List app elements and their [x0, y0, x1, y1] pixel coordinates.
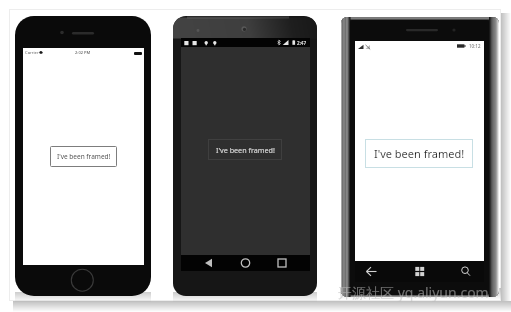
staticText: I've been framed! — [374, 146, 465, 161]
staticText: 2:02 PM — [75, 50, 91, 55]
staticText: 开源社区 yq.aliyun.com — [338, 283, 489, 302]
other: Home — [71, 269, 94, 292]
button[interactable]: I've been framed! — [365, 139, 473, 168]
staticText: 2:47 — [297, 40, 307, 46]
staticText: I've been framed! — [57, 152, 111, 161]
staticText: Carrier — [25, 50, 39, 56]
button[interactable]: I've been framed! — [208, 139, 282, 160]
button[interactable]: I've been framed! — [50, 146, 117, 167]
staticText: 10:12 — [469, 43, 481, 49]
staticText: I've been framed! — [216, 145, 275, 155]
